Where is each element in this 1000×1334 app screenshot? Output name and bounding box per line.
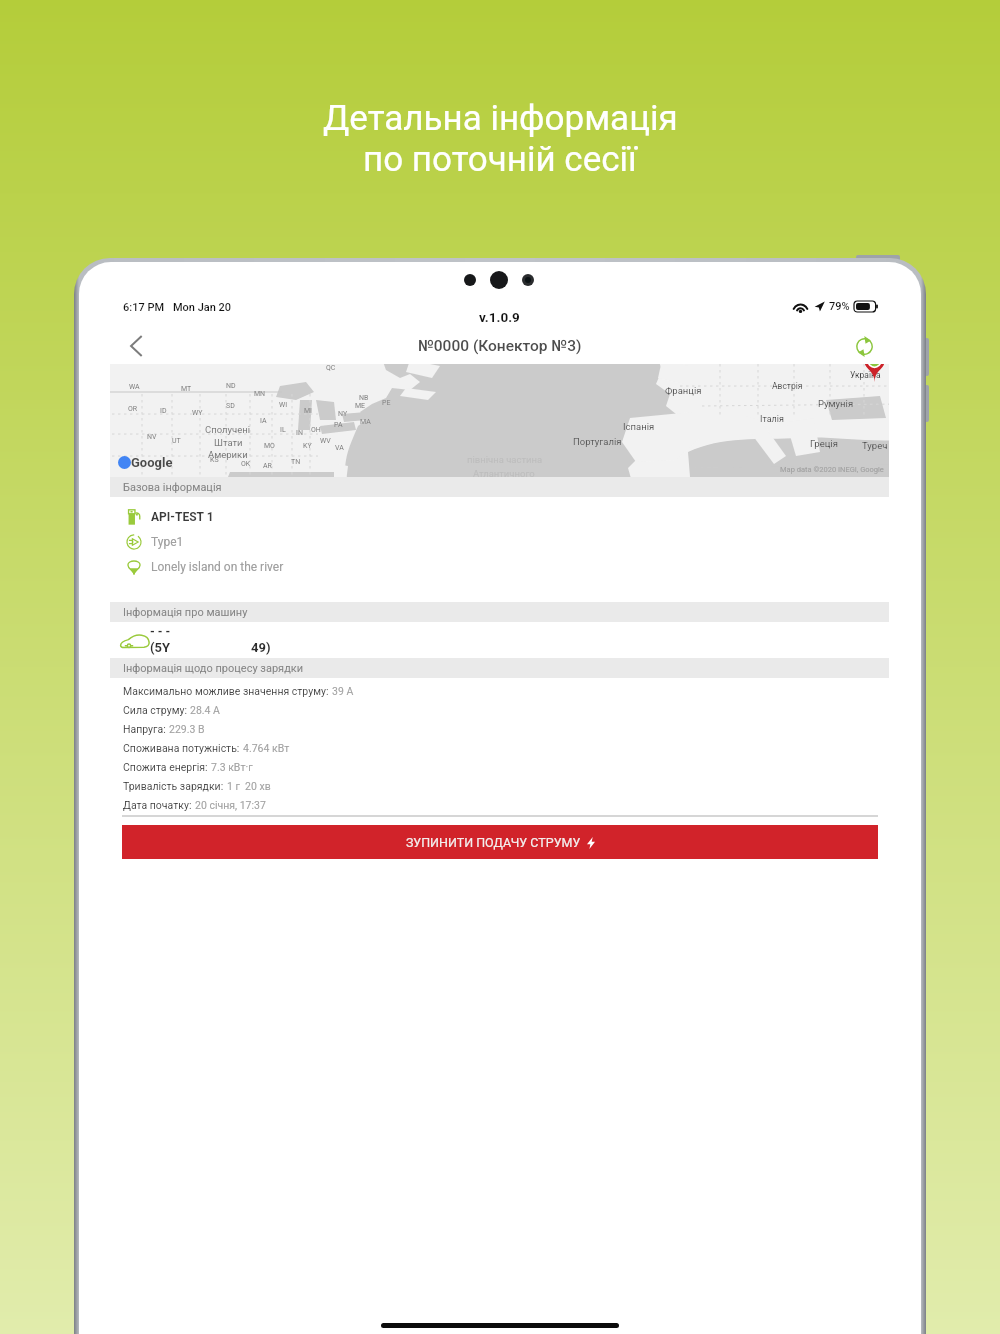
- staticText: UT: [172, 437, 181, 445]
- staticText: OH: [311, 426, 321, 434]
- staticText: Базова інформація: [123, 481, 222, 494]
- staticText: MI: [304, 407, 313, 415]
- staticText: Штати: [214, 437, 243, 448]
- staticText: (5Y: [150, 640, 171, 655]
- staticText: - - -: [150, 625, 171, 639]
- staticText: Україна: [850, 370, 881, 380]
- staticText: API-TEST 1: [151, 510, 214, 524]
- staticText: QC: [326, 364, 336, 372]
- staticText: Італія: [760, 414, 784, 425]
- staticText: OR: [128, 405, 138, 413]
- staticText: MN: [254, 390, 266, 398]
- staticText: ME: [355, 402, 366, 410]
- staticText: 20 січня, 17:37: [195, 799, 266, 811]
- staticText: KS: [210, 456, 219, 464]
- staticText: Максимально можливе значення струму:: [123, 685, 329, 697]
- staticText: WV: [320, 437, 331, 445]
- staticText: ND: [226, 382, 236, 390]
- staticText: 4.764 кВт: [243, 742, 290, 754]
- staticText: Австрія: [772, 381, 803, 391]
- staticText: Google: [131, 455, 173, 470]
- staticText: ID: [160, 407, 167, 415]
- staticText: WI: [279, 401, 288, 409]
- staticText: 229.3 В: [169, 723, 205, 735]
- staticText: №0000 (Конектор №3): [418, 337, 582, 355]
- staticText: PA: [334, 421, 343, 429]
- staticText: Румунія: [818, 398, 854, 409]
- staticText: по поточній сесії: [363, 139, 637, 180]
- staticText: 28.4 А: [190, 704, 220, 716]
- staticText: Тривалість зарядки:: [123, 780, 224, 792]
- staticText: IN: [296, 429, 303, 437]
- staticText: WY: [192, 409, 203, 417]
- staticText: ЗУПИНИТИ ПОДАЧУ СТРУМУ: [406, 835, 581, 850]
- staticText: Америки: [208, 449, 248, 460]
- staticText: TN: [291, 458, 301, 466]
- button[interactable]: Back: [118, 328, 154, 364]
- staticText: PE: [382, 399, 391, 407]
- staticText: Детальна інформація: [323, 98, 678, 139]
- staticText: Інформація про машину: [123, 606, 248, 619]
- staticText: v.1.0.9: [479, 309, 520, 325]
- button[interactable]: ЗУПИНИТИ ПОДАЧУ СТРУМУ: [122, 825, 878, 859]
- staticText: NB: [359, 394, 369, 402]
- staticText: 79%: [829, 300, 850, 313]
- staticText: північна частина: [467, 454, 543, 465]
- staticText: MO: [264, 442, 275, 450]
- staticText: KY: [303, 442, 312, 450]
- staticText: Греція: [810, 438, 838, 449]
- staticText: IA: [260, 417, 267, 425]
- staticText: IL: [280, 426, 286, 434]
- staticText: 39 А: [332, 685, 354, 697]
- button[interactable]: Refresh: [847, 329, 881, 363]
- staticText: Португалія: [573, 436, 622, 447]
- staticText: AR: [263, 462, 272, 470]
- staticText: Map data ©2020 INEGI, Google: [780, 465, 884, 474]
- staticText: 6:17 PM: [123, 301, 165, 314]
- staticText: NV: [147, 433, 157, 441]
- staticText: WA: [129, 383, 140, 391]
- staticText: Type1: [151, 535, 184, 549]
- staticText: Спожита енергія:: [123, 761, 208, 773]
- staticText: Атлантичного: [473, 468, 535, 477]
- staticText: SD: [226, 402, 235, 410]
- staticText: Туреч: [862, 440, 888, 451]
- staticText: 1 г 20 хв: [227, 780, 271, 792]
- staticText: Mon Jan 20: [173, 301, 232, 314]
- staticText: Напруга:: [123, 723, 166, 735]
- staticText: Франція: [665, 385, 702, 396]
- staticText: MA: [360, 418, 371, 426]
- staticText: NY: [338, 410, 348, 418]
- staticText: VA: [335, 444, 344, 452]
- staticText: Іспанія: [623, 421, 655, 432]
- staticText: 7.3 кВт·г: [211, 761, 253, 773]
- staticText: Сила струму:: [123, 704, 187, 716]
- staticText: Сполучені: [205, 424, 250, 435]
- staticText: Інформація щодо процесу зарядки: [123, 662, 304, 675]
- staticText: MT: [181, 385, 192, 393]
- staticText: Lonely island on the river: [151, 560, 284, 574]
- staticText: 49): [251, 640, 271, 655]
- staticText: OK: [241, 460, 251, 468]
- staticText: Дата початку:: [123, 799, 192, 811]
- staticText: Споживана потужність:: [123, 742, 240, 754]
